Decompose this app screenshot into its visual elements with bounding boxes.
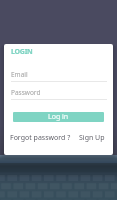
staticText: Sign Up [79,133,105,143]
button[interactable]: Forgot password ? [10,133,71,143]
staticText: LOGIN [11,47,33,57]
staticText: Email [11,70,28,79]
staticText: Forgot password ? [10,133,71,143]
button[interactable]: Sign Up [79,133,105,143]
staticText: Log in [48,112,69,122]
button[interactable]: Log in [13,112,104,122]
staticText: Password [11,88,41,97]
